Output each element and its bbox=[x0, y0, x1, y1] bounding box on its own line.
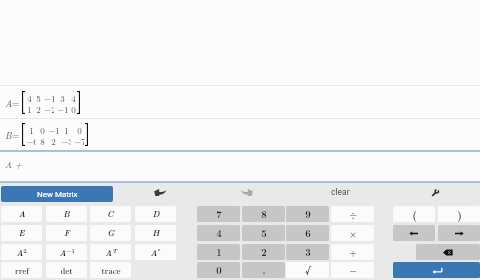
staticText: × bbox=[349, 227, 357, 239]
staticText: 1 bbox=[29, 124, 34, 135]
staticText: 2 bbox=[261, 245, 267, 259]
button[interactable]: 6 bbox=[286, 225, 329, 241]
staticText: 8 bbox=[40, 135, 45, 146]
button[interactable]: 3 bbox=[286, 244, 329, 260]
button[interactable]: 0 bbox=[197, 262, 240, 278]
button[interactable]: Right bbox=[438, 225, 480, 241]
staticText: 2 bbox=[36, 103, 41, 114]
staticText: A + bbox=[5, 158, 22, 171]
staticText: clear bbox=[331, 187, 350, 197]
staticText: ÷ bbox=[349, 208, 357, 220]
button[interactable]: Left bbox=[393, 225, 435, 241]
staticText: 9 bbox=[305, 207, 311, 221]
staticText: 4 bbox=[27, 92, 32, 103]
button[interactable]: Backspace bbox=[416, 244, 480, 260]
staticText: ) bbox=[457, 207, 462, 222]
button[interactable]: A2 bbox=[1, 244, 42, 260]
button[interactable]: AT bbox=[90, 244, 131, 260]
button[interactable]: + bbox=[331, 244, 374, 260]
staticText: B bbox=[63, 208, 70, 220]
staticText: −1 bbox=[44, 92, 54, 103]
button[interactable]: × bbox=[331, 225, 374, 241]
staticText: = bbox=[12, 128, 20, 141]
button[interactable]: trace bbox=[90, 262, 131, 278]
staticText: A bbox=[5, 96, 12, 109]
staticText: 5 bbox=[261, 226, 267, 240]
staticText: 0 bbox=[216, 263, 222, 277]
staticText: 7 bbox=[216, 207, 222, 221]
button[interactable]: A−1 bbox=[46, 244, 87, 260]
staticText: A−1 bbox=[59, 246, 75, 258]
button[interactable]: New Matrix bbox=[1, 186, 113, 202]
staticText: B bbox=[5, 128, 12, 141]
button[interactable]: Undo bbox=[154, 189, 166, 196]
staticText: 1 bbox=[216, 245, 222, 259]
button[interactable]: 8 bbox=[242, 206, 285, 222]
staticText: G bbox=[107, 227, 115, 239]
staticText: C bbox=[107, 208, 114, 220]
button[interactable]: A* bbox=[135, 244, 176, 260]
staticText: 8 bbox=[261, 207, 267, 221]
button[interactable]: √ bbox=[286, 262, 329, 278]
staticText: trace bbox=[101, 265, 121, 276]
button[interactable]: 4 bbox=[197, 225, 240, 241]
staticText: 2 bbox=[51, 135, 56, 146]
staticText: New Matrix bbox=[37, 190, 78, 199]
button[interactable]: det bbox=[46, 262, 87, 278]
staticText: 3 bbox=[60, 92, 65, 103]
staticText: −7 bbox=[74, 135, 84, 146]
staticText: H bbox=[152, 227, 160, 239]
button[interactable]: − bbox=[331, 262, 374, 278]
staticText: −6 bbox=[26, 135, 36, 146]
button[interactable]: 5 bbox=[242, 225, 285, 241]
staticText: ( bbox=[412, 207, 417, 222]
staticText: 0 bbox=[71, 103, 76, 114]
button[interactable]: H bbox=[135, 225, 176, 241]
staticText: 4 bbox=[71, 92, 76, 103]
button[interactable]: E bbox=[1, 225, 42, 241]
button[interactable]: 1 bbox=[197, 244, 240, 260]
staticText: F bbox=[64, 227, 70, 239]
button[interactable]: G bbox=[90, 225, 131, 241]
button[interactable]: A bbox=[1, 206, 42, 222]
button[interactable]: C bbox=[90, 206, 131, 222]
staticText: 0 bbox=[40, 124, 45, 135]
staticText: −2 bbox=[44, 103, 54, 114]
staticText: 1 bbox=[64, 124, 69, 135]
staticText: 5 bbox=[36, 92, 41, 103]
staticText: √ bbox=[305, 262, 311, 278]
staticText: 1 bbox=[27, 103, 32, 114]
staticText: rref bbox=[15, 265, 29, 276]
staticText: 3 bbox=[305, 245, 311, 259]
button[interactable]: D bbox=[135, 206, 176, 222]
button[interactable]: ) bbox=[438, 206, 480, 222]
button[interactable]: . bbox=[242, 262, 285, 278]
staticText: A bbox=[18, 208, 26, 220]
staticText: −1 bbox=[48, 124, 58, 135]
staticText: A2 bbox=[16, 246, 27, 258]
button[interactable]: F bbox=[46, 225, 87, 241]
button[interactable]: ÷ bbox=[331, 206, 374, 222]
button[interactable]: 7 bbox=[197, 206, 240, 222]
button[interactable]: 9 bbox=[286, 206, 329, 222]
staticText: AT bbox=[105, 246, 117, 258]
button[interactable]: rref bbox=[1, 262, 42, 278]
staticText: A* bbox=[150, 246, 161, 258]
button[interactable]: B bbox=[46, 206, 87, 222]
staticText: D bbox=[152, 208, 160, 220]
button[interactable]: clear bbox=[320, 183, 360, 201]
staticText: 4 bbox=[216, 226, 222, 240]
staticText: = bbox=[12, 96, 20, 109]
staticText: − bbox=[349, 264, 357, 276]
button[interactable]: Enter bbox=[393, 262, 480, 278]
button[interactable]: Settings bbox=[430, 188, 440, 198]
staticText: E bbox=[18, 227, 25, 239]
button[interactable]: Redo bbox=[241, 189, 253, 196]
button[interactable]: ( bbox=[393, 206, 435, 222]
staticText: −1 bbox=[57, 103, 67, 114]
staticText: −3 bbox=[61, 135, 71, 146]
button[interactable]: 2 bbox=[242, 244, 285, 260]
staticText: det bbox=[60, 265, 73, 276]
staticText: + bbox=[349, 246, 357, 258]
staticText: . bbox=[262, 263, 266, 277]
